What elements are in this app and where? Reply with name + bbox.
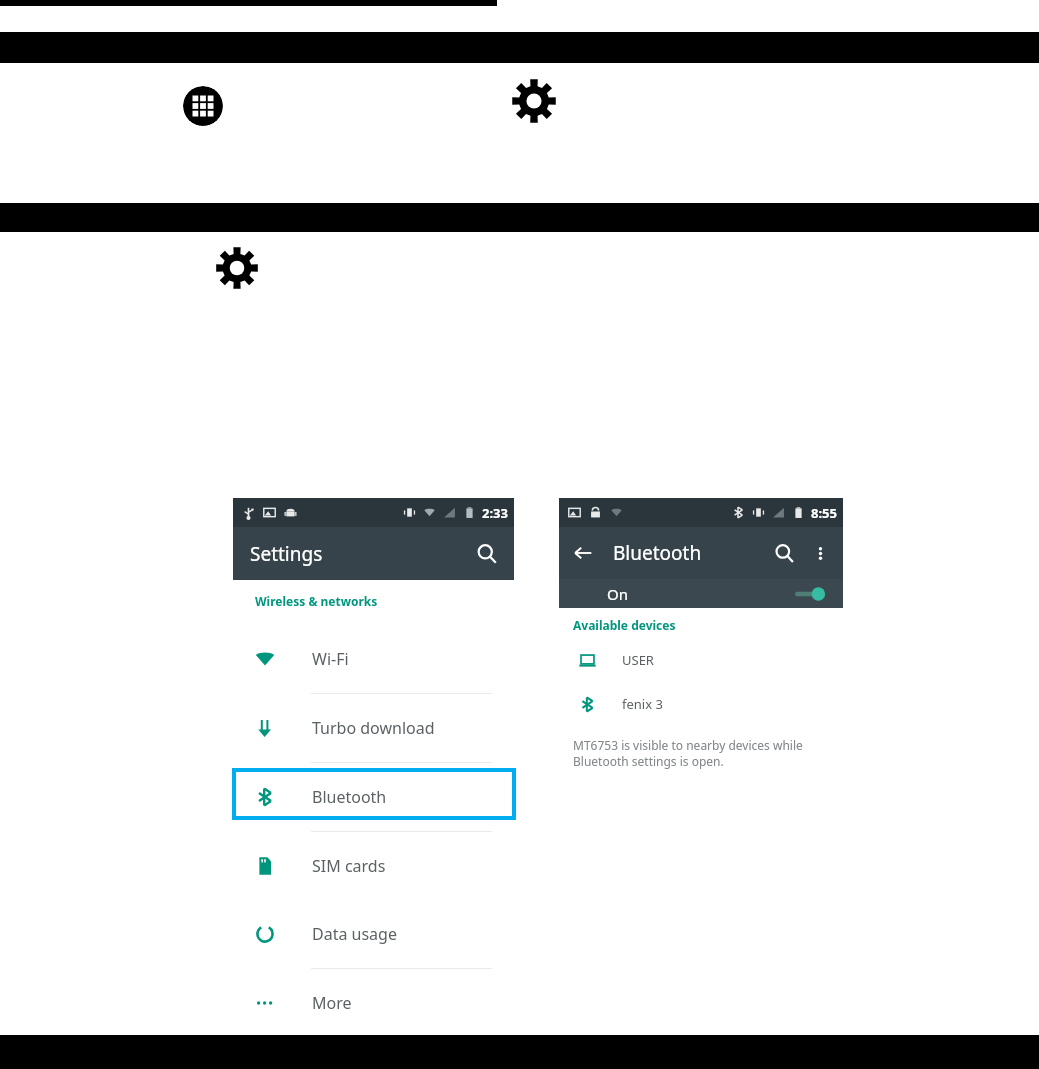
button[interactable]: Turbo download xyxy=(233,694,514,762)
button[interactable]: Settings xyxy=(511,78,557,124)
staticText: Turbo download xyxy=(312,717,435,739)
staticText: Bluetooth xyxy=(312,786,387,808)
staticText: 2:33 xyxy=(482,504,508,522)
button[interactable]: Data usage xyxy=(233,900,514,968)
staticText: SIM cards xyxy=(312,855,386,877)
button[interactable]: All apps xyxy=(183,86,223,126)
staticText: More xyxy=(312,992,352,1014)
staticText: Bluetooth xyxy=(613,540,702,566)
button[interactable]: Search xyxy=(476,543,498,565)
button[interactable]: fenix 3 xyxy=(559,689,843,719)
button[interactable]: Settings xyxy=(215,246,259,290)
button[interactable]: Bluetooth highlighted xyxy=(232,768,516,820)
button[interactable]: SIM cards xyxy=(233,832,514,900)
staticText: Available devices xyxy=(573,617,676,633)
button[interactable]: Bluetooth xyxy=(233,763,514,831)
button[interactable]: Wi-Fi xyxy=(233,625,514,693)
staticText: Wi-Fi xyxy=(312,648,349,670)
staticText: MT6753 is visible to nearby devices whil… xyxy=(573,737,827,769)
button[interactable]: More xyxy=(233,969,514,1037)
staticText: 8:55 xyxy=(811,504,837,522)
staticText: USER xyxy=(622,651,654,669)
staticText: fenix 3 xyxy=(622,695,663,713)
button[interactable]: Back xyxy=(572,542,594,564)
staticText: On xyxy=(607,584,628,604)
button[interactable]: More options xyxy=(812,545,829,562)
staticText: Data usage xyxy=(312,923,397,945)
staticText: Settings xyxy=(250,541,323,567)
button[interactable]: Search xyxy=(774,543,795,564)
button[interactable]: USER xyxy=(559,645,843,675)
button[interactable]: On xyxy=(559,579,843,608)
staticText: Wireless & networks xyxy=(255,593,378,609)
